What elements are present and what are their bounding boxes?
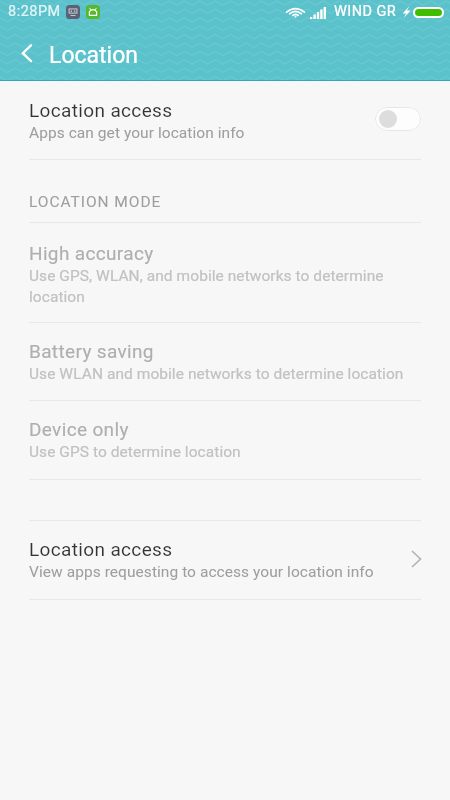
staticText: High accuracy: [29, 242, 154, 264]
button[interactable]: Device only: [0, 401, 450, 479]
button[interactable]: Location access: [0, 82, 450, 159]
staticText: Location access: [29, 99, 173, 121]
staticText: Use WLAN and mobile networks to determin…: [29, 365, 417, 383]
staticText: Use GPS, WLAN, and mobile networks to de…: [29, 267, 417, 306]
button[interactable]: Back: [5, 33, 41, 69]
staticText: Use GPS to determine location: [29, 443, 417, 461]
staticText: View apps requesting to access your loca…: [29, 563, 374, 581]
staticText: Device only: [29, 418, 129, 440]
button[interactable]: High accuracy: [0, 223, 450, 322]
staticText: Location: [49, 42, 138, 69]
button[interactable]: Location access toggle: [375, 107, 421, 131]
button[interactable]: Location access: [0, 521, 450, 599]
button[interactable]: Battery saving: [0, 323, 450, 400]
staticText: Battery saving: [29, 340, 154, 362]
staticText: Apps can get your location info: [29, 124, 245, 142]
staticText: 8:28PM: [8, 3, 61, 20]
staticText: WIND GR: [334, 3, 397, 20]
staticText: LOCATION MODE: [29, 193, 162, 211]
staticText: Location access: [29, 538, 173, 560]
